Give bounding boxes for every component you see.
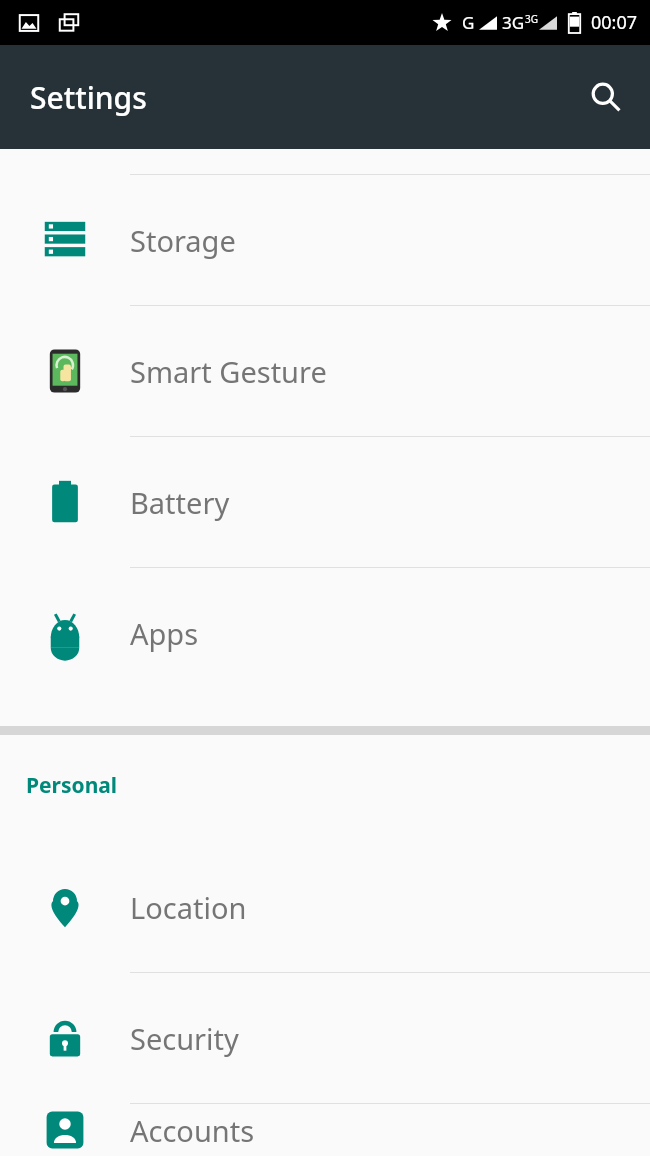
staticText: Location bbox=[130, 888, 247, 927]
staticText: Personal bbox=[26, 771, 118, 800]
staticText: Security bbox=[130, 1019, 239, 1058]
staticText: Smart Gesture bbox=[130, 352, 327, 391]
staticText: 00:07 bbox=[591, 10, 638, 35]
button[interactable]: Search bbox=[580, 71, 632, 123]
staticText: G bbox=[462, 11, 475, 34]
button[interactable]: Storage bbox=[0, 175, 650, 305]
button[interactable]: Battery bbox=[0, 437, 650, 567]
staticText: Storage bbox=[130, 221, 236, 260]
button[interactable]: Location bbox=[0, 842, 650, 972]
button[interactable]: Apps bbox=[0, 568, 650, 698]
button[interactable]: Smart Gesture bbox=[0, 306, 650, 436]
staticText: 3G bbox=[525, 12, 538, 26]
staticText: 3G bbox=[502, 11, 525, 34]
staticText: Apps bbox=[130, 614, 199, 653]
button[interactable]: Security bbox=[0, 973, 650, 1103]
staticText: Battery bbox=[130, 483, 230, 522]
staticText: Accounts bbox=[130, 1111, 255, 1150]
button[interactable]: Accounts bbox=[0, 1104, 650, 1156]
staticText: Settings bbox=[30, 77, 147, 118]
